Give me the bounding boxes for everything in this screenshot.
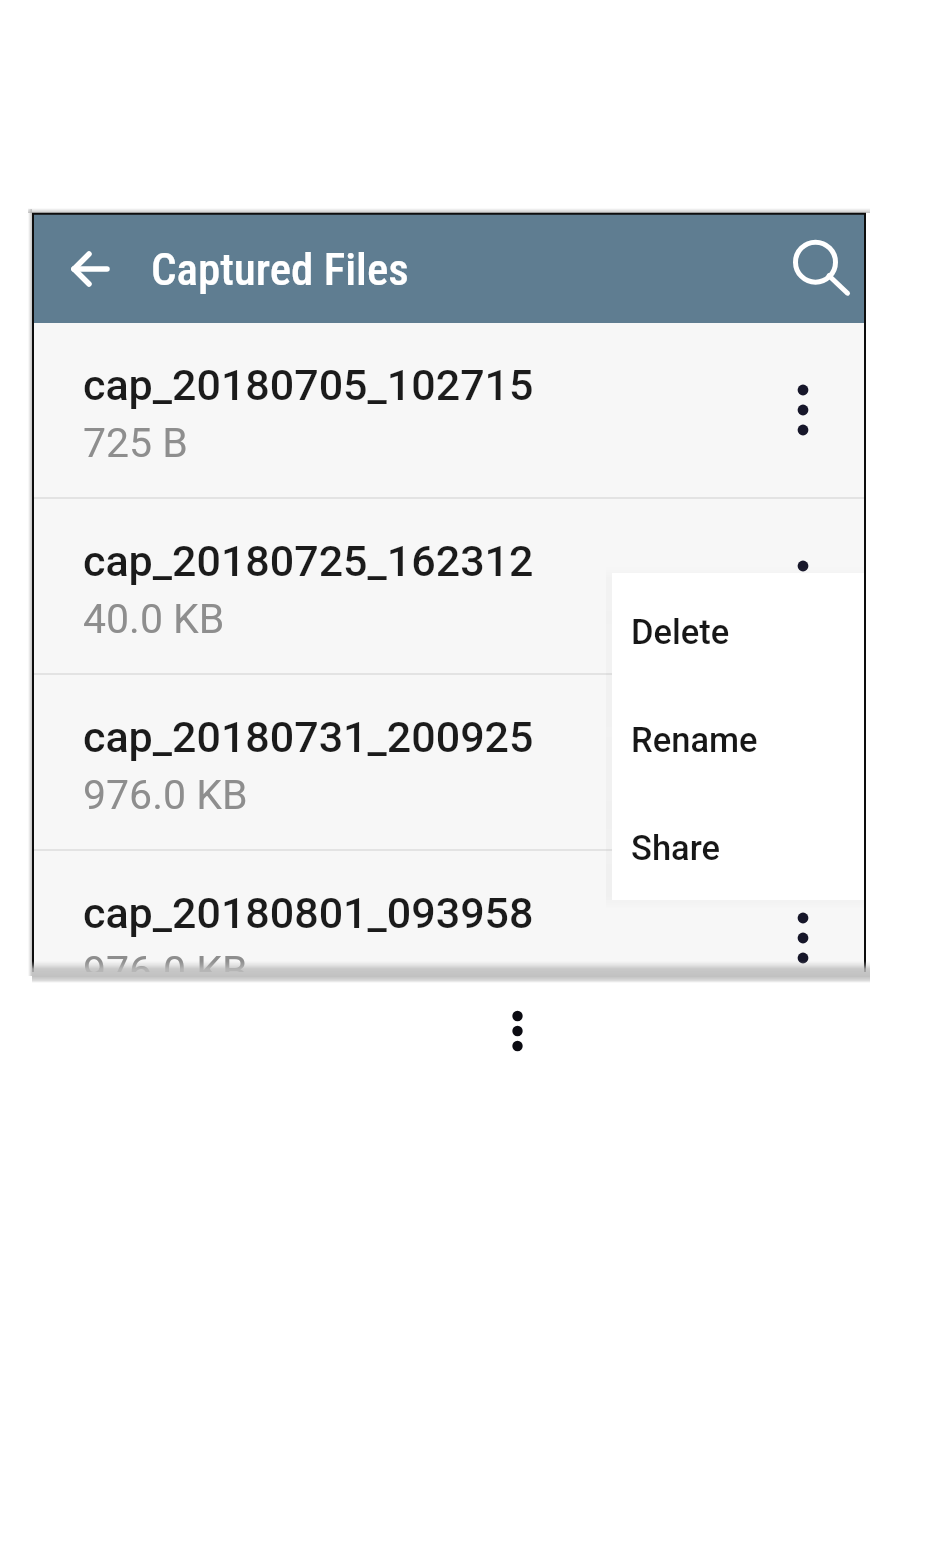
- button[interactable]: Delete: [612, 583, 865, 691]
- staticText: Share: [631, 828, 721, 868]
- staticText: cap_20180725_162312: [83, 536, 534, 586]
- button[interactable]: More options: [781, 564, 825, 608]
- button[interactable]: More options: [781, 916, 825, 960]
- button[interactable]: More options: [781, 388, 825, 432]
- button[interactable]: cap_20180705_102715: [32, 323, 866, 497]
- staticText: Rename: [631, 720, 758, 760]
- staticText: 40.0 KB: [83, 595, 225, 643]
- button[interactable]: Share: [612, 799, 865, 898]
- button[interactable]: More options: [498, 1006, 538, 1046]
- staticText: 976.0 KB: [83, 771, 248, 819]
- staticText: 976.0 KB: [83, 947, 248, 972]
- button[interactable]: Search: [779, 233, 849, 303]
- staticText: cap_20180731_200925: [83, 712, 534, 762]
- staticText: cap_20180801_093958: [83, 888, 534, 938]
- button[interactable]: cap_20180725_162312: [32, 499, 866, 673]
- button[interactable]: Back: [52, 235, 118, 301]
- button[interactable]: cap_20180801_093958: [32, 851, 866, 972]
- button[interactable]: Rename: [612, 691, 865, 799]
- staticText: cap_20180705_102715: [83, 360, 534, 410]
- button[interactable]: cap_20180731_200925: [32, 675, 866, 849]
- staticText: Delete: [631, 612, 730, 652]
- staticText: Captured Files: [151, 243, 409, 296]
- staticText: 725 B: [83, 419, 188, 467]
